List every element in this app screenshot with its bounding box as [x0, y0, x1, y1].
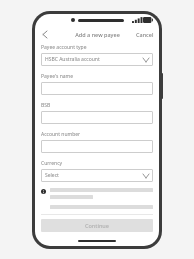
button[interactable]: Continue: [41, 219, 153, 232]
staticText: HSBC Australia account: [45, 56, 143, 63]
staticText: Payee account type: [41, 44, 87, 51]
staticText: Account number: [41, 131, 81, 138]
staticText: Add a new payee: [75, 31, 120, 38]
staticText: Payee's name: [41, 73, 74, 80]
staticText: Continue: [85, 222, 109, 229]
staticText: Select: [45, 172, 143, 179]
staticText: Currency: [41, 160, 63, 167]
other: Information: [41, 189, 46, 194]
button[interactable]: [41, 111, 153, 124]
button[interactable]: [41, 82, 153, 95]
button[interactable]: Select: [41, 169, 153, 182]
button[interactable]: Back: [39, 28, 51, 40]
button[interactable]: Cancel: [131, 29, 159, 40]
button[interactable]: [41, 140, 153, 153]
button[interactable]: HSBC Australia account: [41, 53, 153, 66]
staticText: Cancel: [136, 31, 154, 38]
staticText: BSB: [41, 102, 51, 109]
